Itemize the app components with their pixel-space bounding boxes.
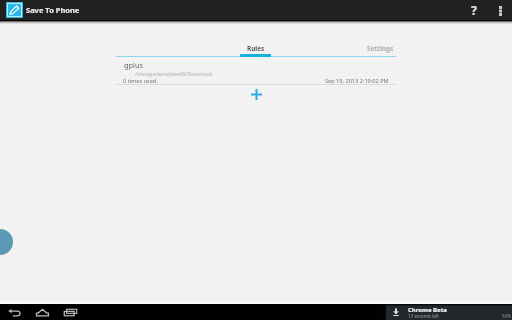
staticText: 0 times used.	[123, 77, 158, 85]
staticText: Chrome Beta	[408, 306, 447, 314]
button[interactable]: Back	[6, 304, 22, 320]
staticText: 56%	[502, 313, 512, 319]
button[interactable]: Chrome Beta	[386, 304, 512, 320]
button[interactable]: Recent apps	[62, 304, 78, 320]
button[interactable]: Home	[34, 304, 50, 320]
staticText: Sep 19, 2013 2:19:02 PM	[325, 77, 389, 85]
button[interactable]: Rules	[247, 44, 265, 53]
staticText: ?	[471, 2, 477, 19]
staticText: /storage/emulated/0/Download	[135, 70, 213, 77]
staticText: Save To Phone	[26, 5, 80, 15]
button[interactable]: Settings	[367, 44, 394, 53]
staticText: 13 seconds left	[408, 313, 439, 319]
staticText: Settings	[367, 44, 394, 53]
button[interactable]: Add rule	[116, 85, 396, 103]
staticText: gplus	[124, 60, 144, 70]
button[interactable]: Help	[459, 0, 483, 20]
button[interactable]: App icon	[6, 2, 23, 18]
button[interactable]: gplus	[116, 58, 396, 85]
staticText: Rules	[247, 44, 265, 53]
button[interactable]: More options	[488, 0, 512, 20]
